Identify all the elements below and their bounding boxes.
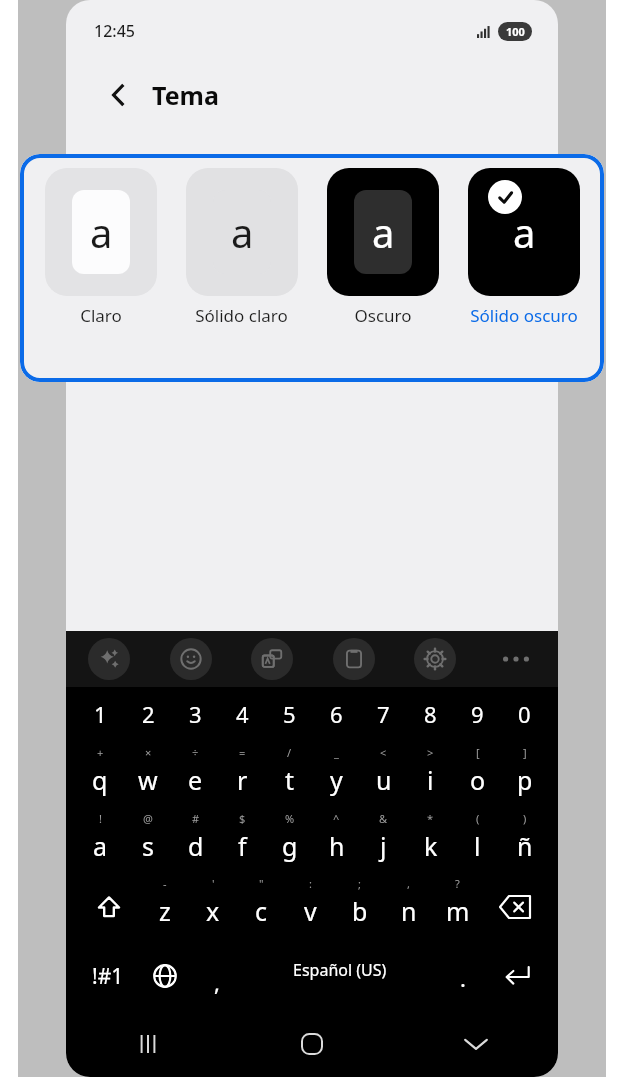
staticText: t bbox=[285, 763, 295, 797]
staticText: i bbox=[427, 763, 434, 797]
button[interactable]: a bbox=[30, 168, 171, 327]
button[interactable]: Ajustes bbox=[414, 638, 456, 680]
button[interactable]: Más bbox=[496, 639, 536, 679]
staticText: !#1 bbox=[92, 962, 124, 991]
button[interactable]: Borrar bbox=[482, 873, 548, 941]
staticText: p bbox=[517, 763, 533, 797]
button[interactable]: 0 bbox=[501, 687, 548, 741]
button[interactable]: [ bbox=[454, 741, 501, 807]
button[interactable]: Intro bbox=[487, 941, 546, 1011]
staticText: # bbox=[192, 811, 200, 826]
staticText: w bbox=[138, 763, 158, 797]
staticText: a bbox=[372, 205, 395, 259]
staticText: l bbox=[474, 829, 481, 863]
button[interactable]: * bbox=[407, 807, 454, 873]
button[interactable]: $ bbox=[219, 807, 266, 873]
button[interactable]: # bbox=[172, 807, 219, 873]
button[interactable]: Recientes bbox=[66, 1011, 230, 1077]
button[interactable]: !#1 bbox=[78, 941, 138, 1011]
button[interactable]: Traducir bbox=[251, 638, 293, 680]
staticText: [ bbox=[476, 745, 480, 760]
button[interactable]: 4 bbox=[219, 687, 266, 741]
button[interactable]: a bbox=[453, 168, 594, 327]
staticText: > bbox=[427, 745, 434, 760]
button[interactable]: Ocultar teclado bbox=[394, 1011, 558, 1077]
button[interactable]: 9 bbox=[454, 687, 501, 741]
staticText: Sólido oscuro bbox=[470, 304, 578, 327]
button[interactable]: a bbox=[312, 168, 453, 327]
staticText: s bbox=[142, 829, 154, 863]
staticText: Tema bbox=[152, 78, 219, 112]
staticText: × bbox=[145, 745, 152, 760]
staticText: o bbox=[470, 763, 486, 797]
button[interactable]: , bbox=[384, 873, 433, 941]
staticText: ] bbox=[523, 745, 527, 760]
staticText: 8 bbox=[424, 699, 437, 729]
staticText: c bbox=[255, 894, 268, 928]
button[interactable]: & bbox=[360, 807, 407, 873]
button[interactable]: 3 bbox=[172, 687, 219, 741]
button[interactable]: Portapapeles bbox=[333, 638, 375, 680]
staticText: b bbox=[352, 894, 368, 928]
button[interactable]: 7 bbox=[360, 687, 407, 741]
button[interactable]: × bbox=[124, 741, 172, 807]
button[interactable]: , bbox=[192, 941, 241, 1011]
staticText: ! bbox=[99, 811, 102, 826]
button[interactable]: ? bbox=[433, 873, 482, 941]
button[interactable]: ) bbox=[501, 807, 548, 873]
staticText: % bbox=[285, 811, 295, 826]
button[interactable]: 8 bbox=[407, 687, 454, 741]
staticText: r bbox=[237, 763, 248, 797]
button[interactable]: = bbox=[219, 741, 266, 807]
staticText: k bbox=[424, 829, 438, 863]
button[interactable]: . bbox=[438, 941, 487, 1011]
staticText: - bbox=[163, 876, 167, 891]
staticText: 0 bbox=[518, 699, 531, 729]
button[interactable]: ^ bbox=[313, 807, 360, 873]
staticText: z bbox=[159, 894, 171, 928]
button[interactable]: a bbox=[171, 168, 312, 327]
button[interactable]: % bbox=[266, 807, 313, 873]
button[interactable]: 5 bbox=[266, 687, 313, 741]
staticText: " bbox=[259, 876, 264, 891]
button[interactable]: 1 bbox=[76, 687, 124, 741]
button[interactable]: < bbox=[360, 741, 407, 807]
button[interactable]: Atrás bbox=[102, 78, 136, 112]
button[interactable]: : bbox=[286, 873, 335, 941]
button[interactable]: > bbox=[407, 741, 454, 807]
button[interactable]: + bbox=[76, 741, 124, 807]
button[interactable]: ( bbox=[454, 807, 501, 873]
button[interactable]: ; bbox=[335, 873, 384, 941]
button[interactable]: Cambiar idioma bbox=[138, 941, 192, 1011]
staticText: 100 bbox=[506, 24, 525, 39]
staticText: Sólido claro bbox=[195, 304, 288, 327]
staticText: : bbox=[309, 876, 312, 891]
button[interactable]: ! bbox=[76, 807, 124, 873]
button[interactable]: Mayúsculas bbox=[76, 873, 141, 941]
button[interactable]: / bbox=[266, 741, 313, 807]
button[interactable]: Asistente bbox=[88, 638, 130, 680]
staticText: 4 bbox=[236, 699, 249, 729]
staticText: d bbox=[188, 829, 204, 863]
button[interactable]: Emoji bbox=[170, 638, 212, 680]
button[interactable]: @ bbox=[124, 807, 172, 873]
staticText: g bbox=[282, 829, 298, 863]
button[interactable]: _ bbox=[313, 741, 360, 807]
staticText: 5 bbox=[283, 699, 296, 729]
button[interactable]: 2 bbox=[124, 687, 172, 741]
button[interactable]: Inicio bbox=[230, 1011, 394, 1077]
staticText: m bbox=[446, 894, 470, 928]
button[interactable]: ÷ bbox=[172, 741, 219, 807]
staticText: a bbox=[90, 205, 113, 259]
button[interactable]: ] bbox=[501, 741, 548, 807]
button[interactable]: Español (US) bbox=[241, 941, 438, 1011]
staticText: ÷ bbox=[192, 745, 199, 760]
staticText: 9 bbox=[471, 699, 484, 729]
staticText: , bbox=[407, 876, 410, 891]
button[interactable]: " bbox=[237, 873, 286, 941]
button[interactable]: - bbox=[141, 873, 189, 941]
staticText: 2 bbox=[142, 699, 155, 729]
button[interactable]: ' bbox=[189, 873, 237, 941]
staticText: 1 bbox=[94, 699, 107, 729]
button[interactable]: 6 bbox=[313, 687, 360, 741]
